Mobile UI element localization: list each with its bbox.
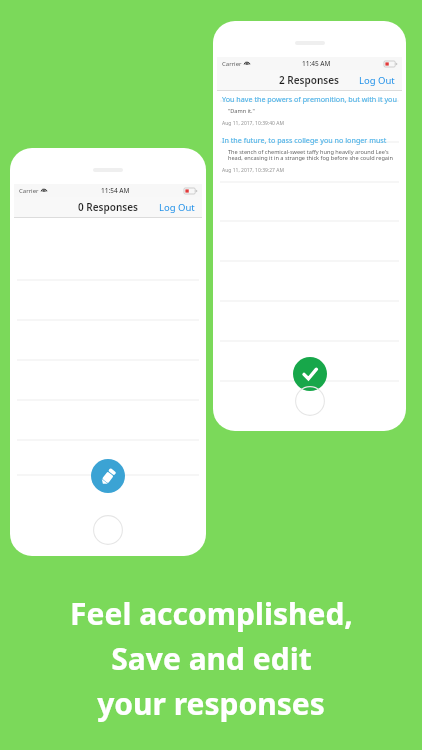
staticText: In the future, to pass college you no lo… [222, 135, 397, 145]
button[interactable]: In the future, to pass college you no lo… [217, 132, 402, 177]
staticText: Aug 11, 2017, 10:39:27 AM [222, 167, 284, 174]
staticText: The stench of chemical-sweet taffy hung … [228, 148, 395, 162]
staticText: your responses [97, 683, 325, 724]
staticText: 0 Responses [78, 200, 139, 214]
staticText: You have the powers of premonition, but … [222, 94, 397, 104]
staticText: Feel accomplished, [70, 593, 353, 634]
button[interactable]: Compose new response [91, 459, 125, 493]
staticText: Carrier [222, 60, 242, 68]
staticText: Save and edit [111, 638, 312, 679]
staticText: Log Out [159, 201, 195, 214]
staticText: 2 Responses [279, 73, 340, 87]
button[interactable]: You have the powers of premonition, but … [217, 91, 402, 130]
button[interactable]: Log Out [152, 198, 202, 217]
staticText: "Damn it." [228, 107, 255, 115]
staticText: Carrier [19, 187, 39, 195]
staticText: 11:54 AM [101, 186, 130, 195]
staticText: Log Out [359, 74, 395, 87]
button[interactable]: Saved [293, 357, 327, 391]
staticText: 11:45 AM [302, 59, 331, 68]
button[interactable]: Log Out [352, 71, 402, 90]
staticText: Aug 11, 2017, 10:39:40 AM [222, 120, 284, 127]
